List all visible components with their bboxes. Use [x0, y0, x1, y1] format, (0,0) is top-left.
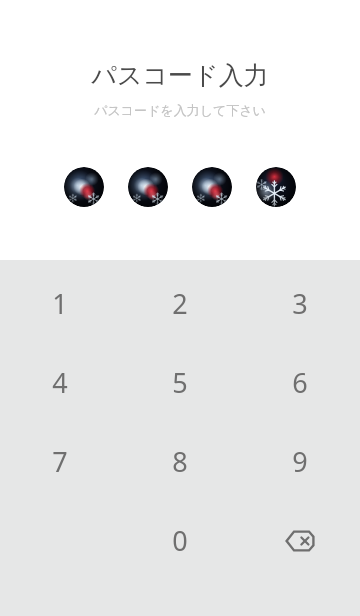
button[interactable]: Delete [240, 501, 360, 580]
staticText: 9 [292, 443, 308, 480]
staticText: 7 [52, 443, 68, 480]
staticText: 3 [292, 285, 308, 322]
button[interactable]: 7 [0, 422, 120, 501]
staticText: 8 [172, 443, 188, 480]
button[interactable]: 0 [120, 501, 240, 580]
staticText: 6 [292, 364, 308, 401]
staticText: パスコードを入力して下さい [94, 102, 266, 118]
button[interactable]: 6 [240, 343, 360, 422]
staticText: 1 [52, 285, 68, 322]
staticText: 5 [172, 364, 188, 401]
button[interactable]: 5 [120, 343, 240, 422]
staticText: パスコード入力 [91, 60, 269, 91]
button[interactable]: 8 [120, 422, 240, 501]
button[interactable]: 1 [0, 264, 120, 343]
button[interactable]: 9 [240, 422, 360, 501]
staticText: 2 [172, 285, 188, 322]
button[interactable]: 2 [120, 264, 240, 343]
button[interactable]: 4 [0, 343, 120, 422]
staticText: 0 [172, 522, 188, 559]
staticText: 4 [52, 364, 68, 401]
button[interactable]: 3 [240, 264, 360, 343]
